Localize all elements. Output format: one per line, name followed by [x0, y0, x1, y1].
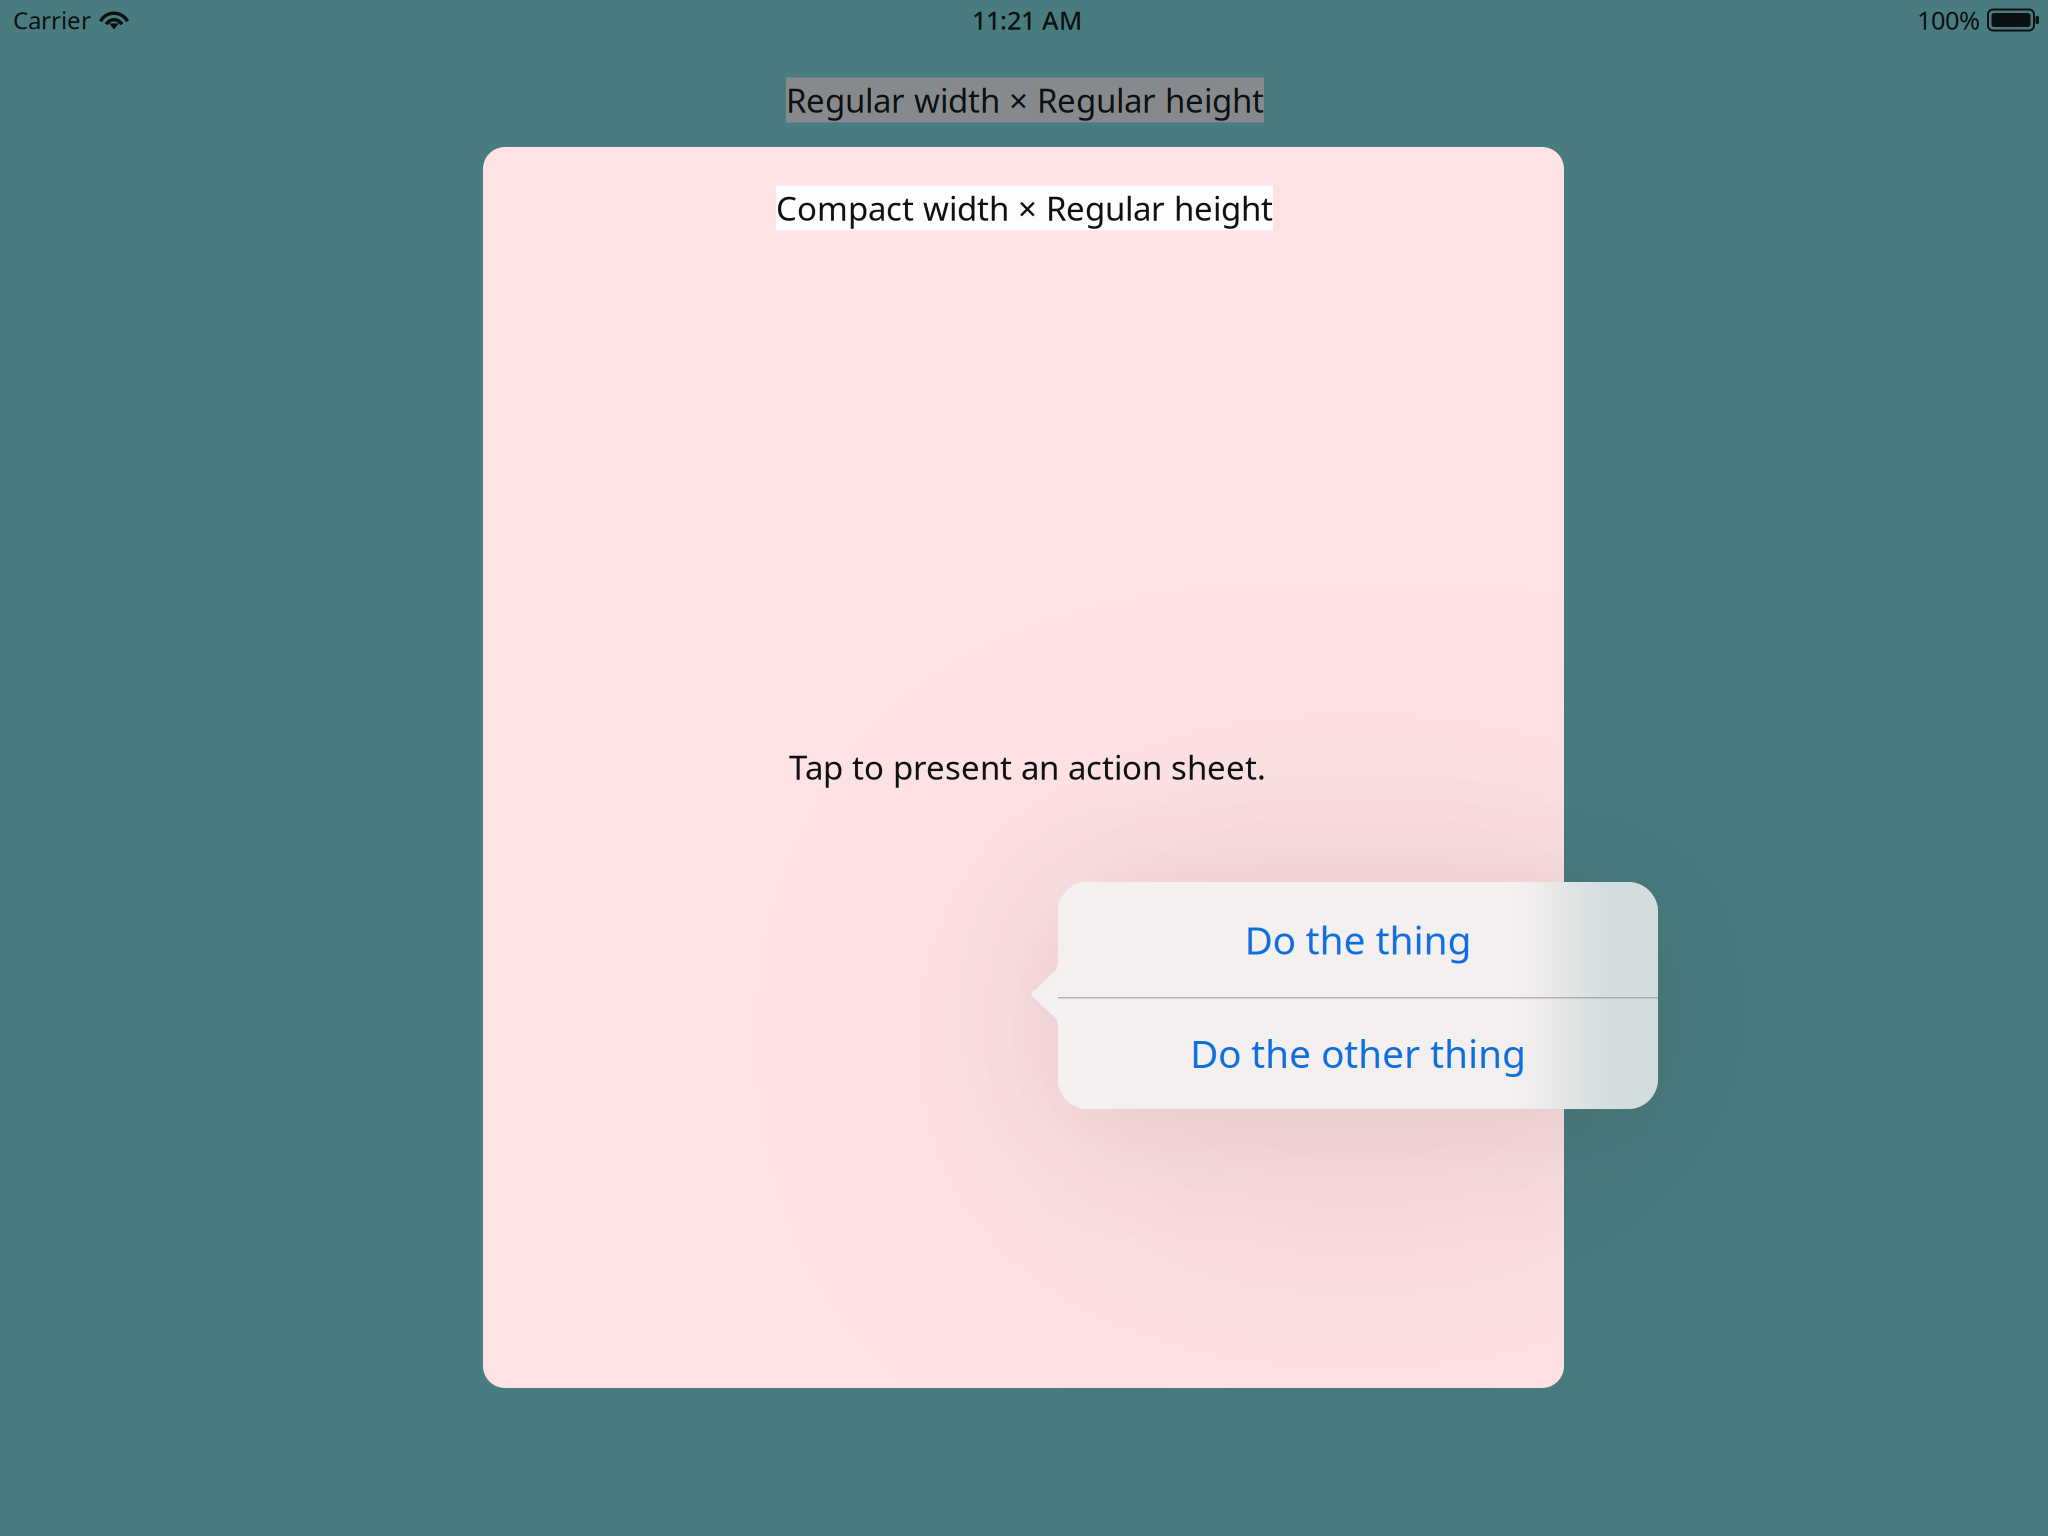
staticText: 11:21 AM [972, 3, 1082, 37]
staticText: Carrier [13, 4, 91, 36]
staticText: Do the other thing [1190, 1027, 1526, 1079]
button[interactable]: Tap to present an action sheet. [789, 745, 1266, 789]
staticText: Tap to present an action sheet. [789, 745, 1266, 789]
staticText: Regular width × Regular height [786, 78, 1264, 122]
button[interactable]: Do the other thing [1058, 997, 1658, 1109]
staticText: 100% [1917, 3, 1980, 37]
button[interactable]: Do the thing [1058, 882, 1658, 997]
staticText: Compact width × Regular height [776, 186, 1273, 230]
staticText: Do the thing [1244, 913, 1471, 966]
